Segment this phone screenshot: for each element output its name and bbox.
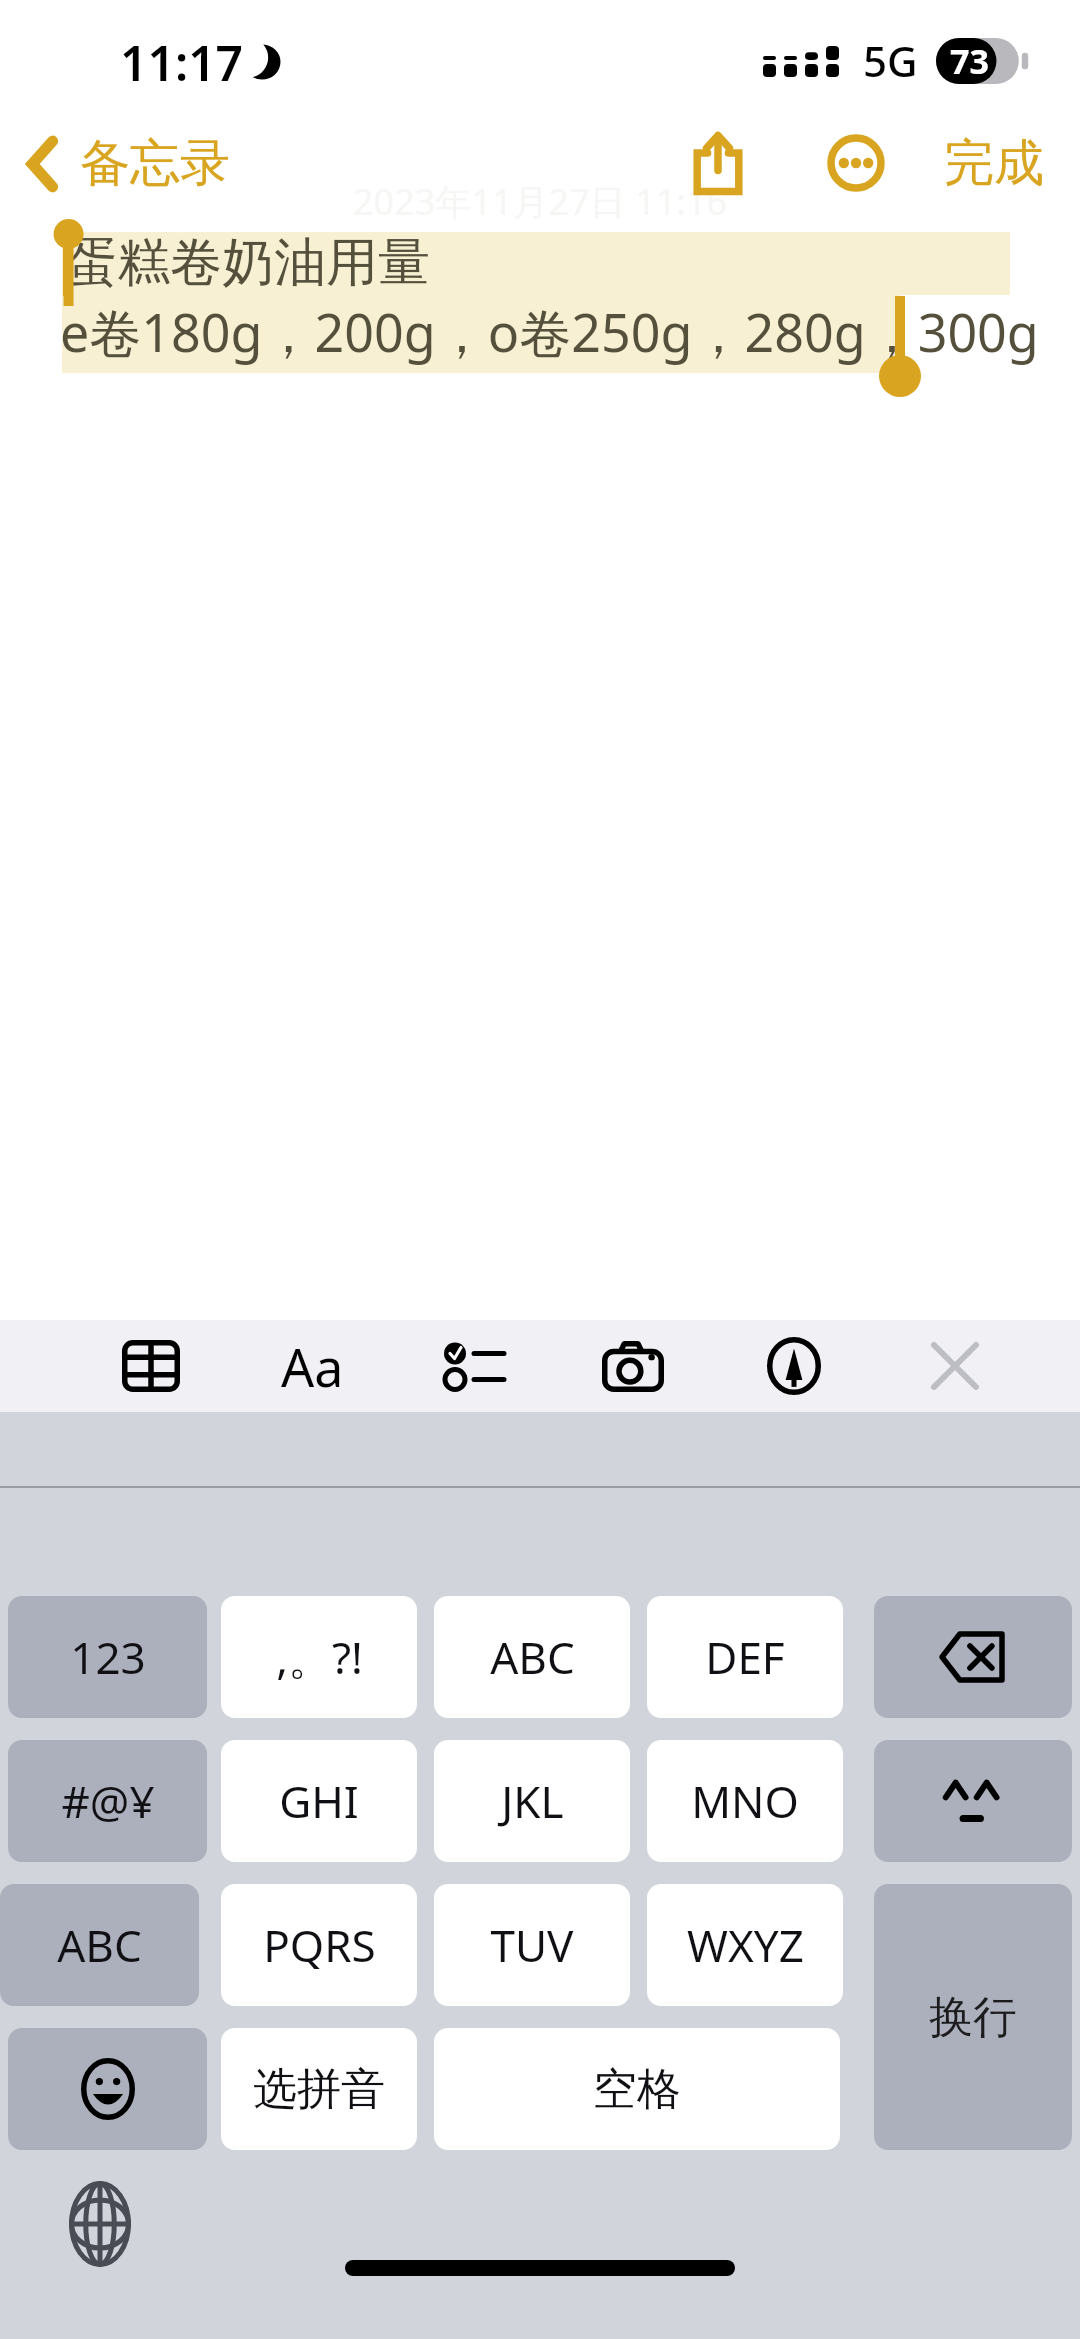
button[interactable]: Emoticons — [874, 1740, 1072, 1862]
button[interactable]: 备忘录 — [0, 124, 246, 203]
staticText: ABC — [490, 1627, 575, 1687]
button[interactable]: ABC — [434, 1596, 630, 1718]
button[interactable]: Insert table — [96, 1320, 206, 1412]
staticText: TUV — [490, 1915, 574, 1975]
staticText: 123 — [70, 1627, 146, 1687]
staticText: #@¥ — [61, 1771, 155, 1831]
button[interactable]: ABC — [0, 1884, 199, 2006]
button[interactable]: More options — [808, 115, 904, 211]
staticText: GHI — [279, 1771, 359, 1831]
button[interactable]: GHI — [221, 1740, 417, 1862]
staticText: MNO — [691, 1771, 799, 1831]
button[interactable]: JKL — [434, 1740, 630, 1862]
staticText: 11:17 — [120, 30, 244, 95]
button[interactable]: WXYZ — [647, 1884, 843, 2006]
staticText: ,。?! — [276, 1627, 363, 1687]
button[interactable]: 空格 — [434, 2028, 840, 2150]
button[interactable]: Share — [670, 115, 766, 211]
button[interactable]: 123 — [8, 1596, 207, 1718]
staticText: 5G — [863, 32, 918, 89]
staticText: 备忘录 — [80, 132, 230, 195]
staticText: DEF — [705, 1627, 785, 1687]
staticText: e卷180g，200g，o卷250g，280g，300g — [60, 296, 1039, 367]
button[interactable]: Close keyboard — [900, 1320, 1010, 1412]
staticText: Aa — [281, 1331, 344, 1402]
button[interactable]: #@¥ — [8, 1740, 207, 1862]
staticText: 完成 — [944, 132, 1044, 195]
button[interactable]: 换行 — [874, 1884, 1072, 2150]
staticText: 蛋糕卷奶油用量 — [66, 230, 430, 296]
button[interactable]: Camera — [578, 1320, 688, 1412]
staticText: ABC — [57, 1915, 142, 1975]
button[interactable]: Emoji — [8, 2028, 207, 2150]
staticText: PQRS — [263, 1915, 376, 1975]
button[interactable]: Markup — [739, 1320, 849, 1412]
staticText: 换行 — [929, 1990, 1017, 2045]
staticText: WXYZ — [687, 1915, 804, 1975]
button[interactable]: MNO — [647, 1740, 843, 1862]
staticText: 73 — [950, 38, 989, 84]
button[interactable]: Checklist — [418, 1320, 528, 1412]
button[interactable]: ,。?! — [221, 1596, 417, 1718]
staticText: 2023年11月27日 11:16 — [353, 177, 728, 226]
button[interactable]: 选拼音 — [221, 2028, 417, 2150]
staticText: 选拼音 — [253, 2062, 385, 2117]
button[interactable]: Text formatting — [257, 1320, 367, 1412]
button[interactable]: DEF — [647, 1596, 843, 1718]
staticText: JKL — [501, 1771, 564, 1831]
button[interactable]: PQRS — [221, 1884, 417, 2006]
button[interactable]: Delete — [874, 1596, 1072, 1718]
button[interactable]: Switch keyboard — [52, 2176, 148, 2272]
staticText: 空格 — [593, 2062, 681, 2117]
button[interactable]: TUV — [434, 1884, 630, 2006]
button[interactable]: 完成 — [934, 118, 1054, 209]
